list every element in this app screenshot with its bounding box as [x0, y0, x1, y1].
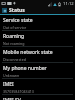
staticText: IMEI	[3, 81, 14, 88]
button[interactable]: Service state	[0, 15, 75, 30]
other: Settings	[2, 8, 7, 13]
staticText: 11:12	[63, 1, 74, 7]
staticText: Not roaming	[3, 41, 25, 46]
staticText: Service state	[3, 17, 33, 24]
staticText: Mobile network state	[3, 49, 53, 56]
staticText: 357035841043413	[3, 89, 34, 94]
staticText: Disconnected	[3, 57, 26, 62]
button[interactable]: Settings	[0, 7, 75, 14]
staticText: Out of service	[3, 25, 27, 30]
button[interactable]: My phone number	[0, 63, 75, 78]
button[interactable]: Roaming	[0, 31, 75, 46]
staticText: IMEI SV	[3, 97, 21, 100]
staticText: Unknown	[3, 73, 20, 78]
button[interactable]: Mobile network state	[0, 47, 75, 62]
staticText: Roaming	[3, 33, 25, 40]
staticText: Status	[9, 7, 25, 14]
button[interactable]: IMEI	[0, 79, 75, 94]
button[interactable]: IMEI SV	[0, 95, 75, 100]
staticText: My phone number	[3, 65, 47, 72]
